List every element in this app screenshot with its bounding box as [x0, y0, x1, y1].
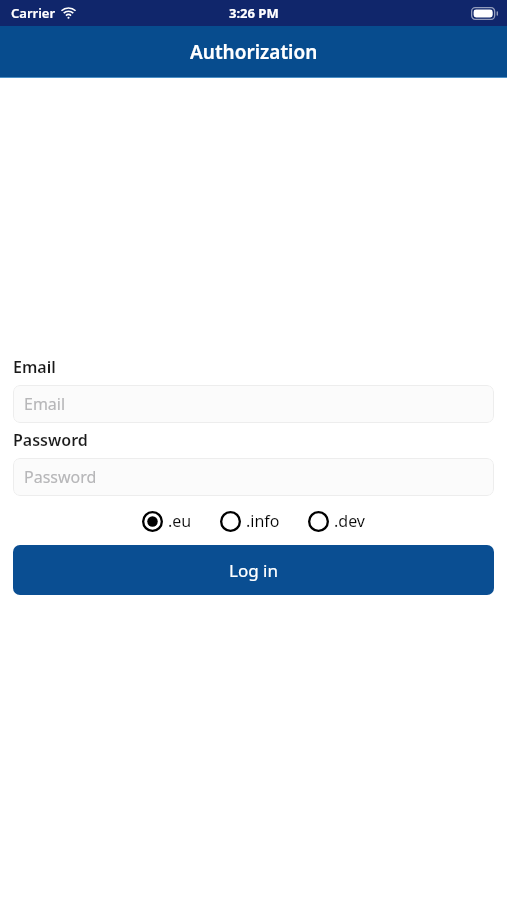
button[interactable]: .dev [307, 506, 366, 536]
staticText: Password [24, 466, 97, 488]
staticText: 3:26 PM [229, 4, 279, 22]
staticText: Authorization [190, 39, 318, 65]
staticText: .dev [334, 510, 365, 532]
staticText: Password [13, 429, 88, 451]
staticText: Email [24, 393, 66, 415]
button[interactable]: .info [219, 506, 281, 536]
staticText: Log in [229, 559, 278, 582]
staticText: Carrier [11, 4, 56, 22]
button[interactable]: .eu [141, 506, 193, 536]
staticText: Email [13, 356, 56, 378]
staticText: .eu [168, 510, 192, 532]
staticText: .info [246, 510, 280, 532]
button[interactable]: Password [13, 458, 494, 496]
button[interactable]: Email [13, 385, 494, 423]
button[interactable]: Log in [13, 545, 494, 595]
